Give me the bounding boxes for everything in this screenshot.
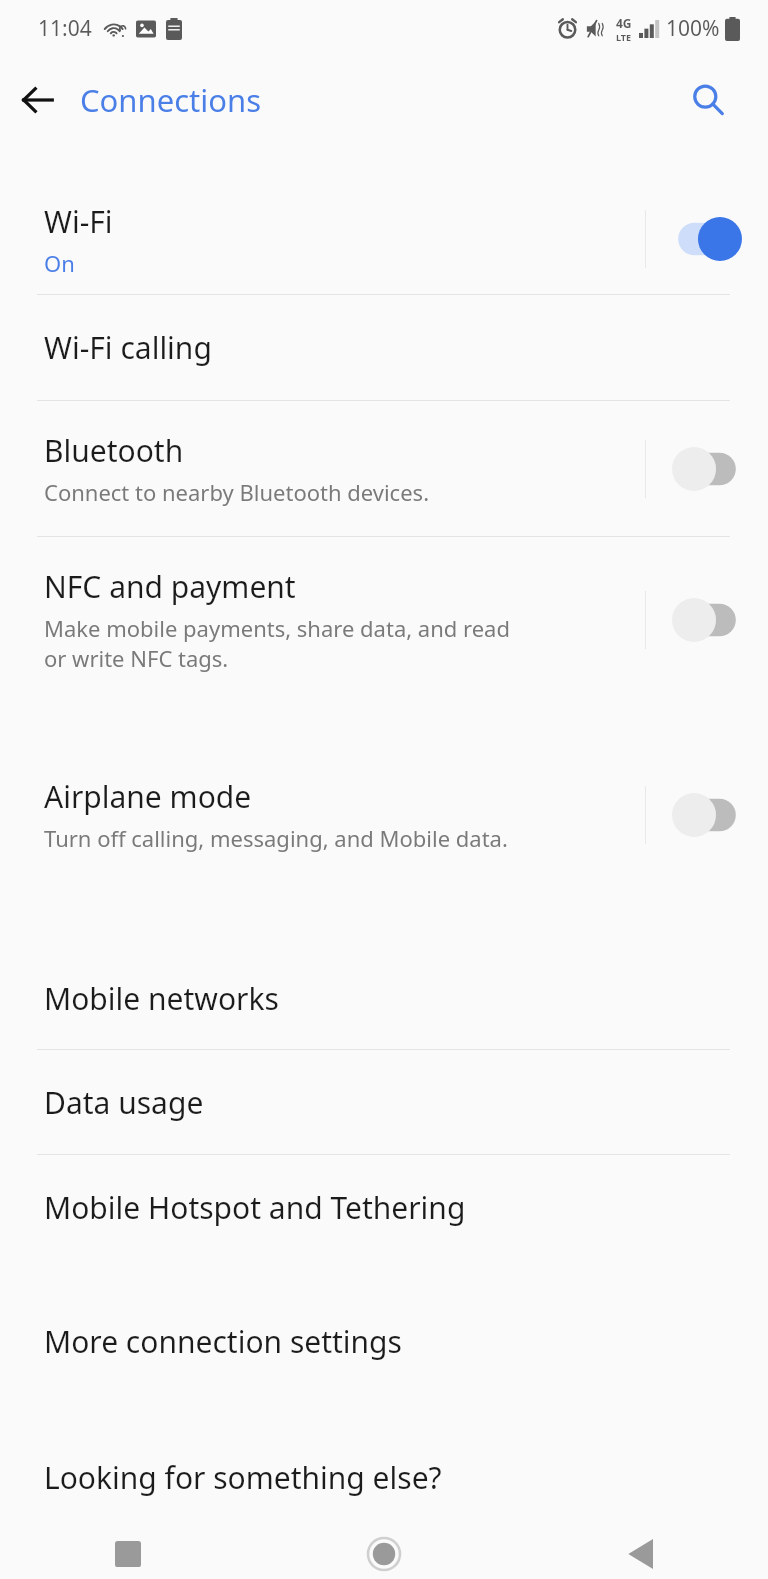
button[interactable]: Wi-Fi [0, 184, 768, 294]
staticText: Mobile networks [44, 978, 279, 1019]
button[interactable]: NFC and payment [0, 537, 768, 702]
button[interactable]: Back [0, 62, 76, 138]
button[interactable]: Airplane mode switch [646, 767, 768, 863]
staticText: 11:04 [38, 14, 92, 43]
staticText: Looking for something else? [44, 1457, 442, 1498]
staticText: Mobile Hotspot and Tethering [44, 1187, 466, 1228]
staticText: Airplane mode [44, 776, 252, 817]
staticText: More connection settings [44, 1321, 402, 1362]
button[interactable]: Search [676, 68, 740, 132]
button[interactable]: Mobile networks [0, 947, 768, 1049]
staticText: Make mobile payments, share data, and re… [44, 613, 510, 673]
button[interactable]: Data usage [0, 1050, 768, 1154]
button[interactable]: More connection settings [0, 1289, 768, 1393]
staticText: Bluetooth [44, 430, 184, 471]
button[interactable]: Wi-Fi calling [0, 295, 768, 400]
staticText: NFC and payment [44, 566, 296, 607]
button[interactable]: Home [256, 1529, 512, 1579]
button[interactable]: NFC and payment switch [646, 572, 768, 668]
staticText: Data usage [44, 1082, 204, 1123]
button[interactable]: Bluetooth switch [646, 421, 768, 517]
button[interactable]: Bluetooth [0, 401, 768, 536]
staticText: Turn off calling, messaging, and Mobile … [44, 823, 508, 853]
button[interactable]: Back [512, 1529, 768, 1579]
button[interactable]: Airplane mode [0, 747, 768, 882]
staticText: Wi-Fi [44, 201, 113, 242]
staticText: 100% [666, 14, 720, 43]
staticText: Wi-Fi calling [44, 327, 212, 368]
staticText: LTE [616, 31, 632, 43]
button[interactable]: Mobile Hotspot and Tethering [0, 1155, 768, 1259]
staticText: 4G [616, 15, 632, 31]
button[interactable]: Looking for something else? [0, 1425, 768, 1529]
staticText: Connect to nearby Bluetooth devices. [44, 477, 430, 507]
staticText: On [44, 248, 75, 278]
button[interactable]: Wi-Fi switch [646, 191, 768, 287]
staticText: Connections [80, 79, 261, 121]
button[interactable]: Recents [0, 1529, 256, 1579]
